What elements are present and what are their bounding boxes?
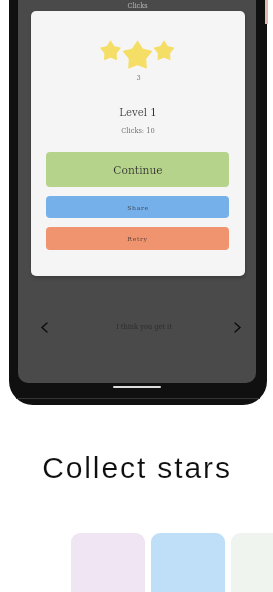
button[interactable]: Share [46,196,229,218]
staticText: Collect stars [42,451,232,485]
staticText: Share [127,204,149,211]
staticText: Retry [127,235,148,242]
staticText: Level 1 [119,107,157,119]
staticText: Clicks [127,2,148,10]
staticText: 3 [136,74,141,82]
button[interactable] [151,533,225,592]
staticText: Continue [113,164,163,176]
staticText: I think you get it [116,323,172,331]
button[interactable]: Continue [46,152,229,187]
button[interactable]: Retry [46,227,229,250]
staticText: Clicks: 10 [121,127,155,135]
button[interactable]: Next [218,317,256,337]
button[interactable]: Previous [18,317,70,337]
